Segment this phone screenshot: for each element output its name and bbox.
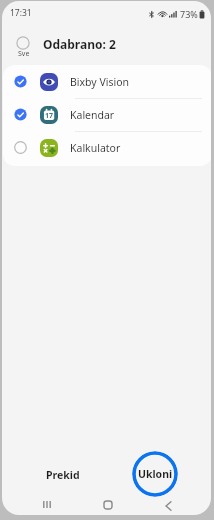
staticText: Sve	[18, 49, 30, 59]
button[interactable]: Sve	[10, 34, 37, 60]
staticText: Bixby Vision	[70, 75, 130, 89]
button[interactable]: Ukloni	[132, 451, 178, 497]
button[interactable]: Bixby Vision	[3, 65, 211, 98]
button[interactable]: 17	[3, 98, 211, 131]
button[interactable]: Prekid	[40, 462, 86, 488]
button[interactable]: Home	[94, 491, 122, 515]
staticText: Prekid	[46, 468, 80, 482]
button[interactable]: Kalkulator	[3, 131, 211, 164]
staticText: Ukloni	[138, 467, 173, 481]
button[interactable]: Recents	[33, 490, 61, 515]
staticText: 17	[45, 111, 54, 121]
staticText: Kalendar	[70, 108, 115, 122]
staticText: Odabrano: 2	[43, 36, 116, 52]
staticText: 73%	[180, 8, 198, 20]
staticText: Kalkulator	[70, 141, 121, 155]
staticText: 17:31	[10, 7, 32, 19]
button[interactable]: Back	[154, 492, 182, 515]
